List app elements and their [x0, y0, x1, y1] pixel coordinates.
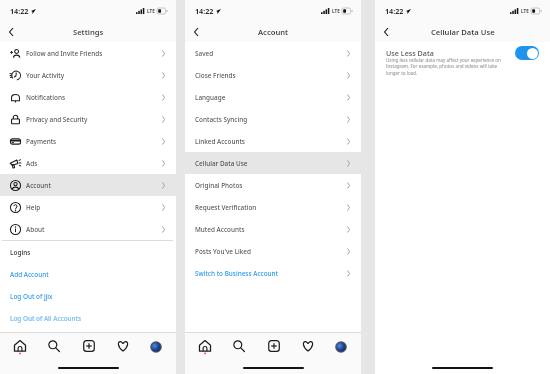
button[interactable]: Search — [45, 337, 63, 355]
button[interactable]: Activity — [114, 337, 132, 355]
button[interactable]: Privacy and Security — [0, 108, 176, 130]
staticText: Using less cellular data may affect your… — [386, 57, 516, 77]
button[interactable]: Follow and Invite Friends — [0, 42, 176, 64]
button[interactable]: Ads — [0, 152, 176, 174]
staticText: Original Photos — [195, 181, 243, 190]
staticText: Cellular Data Use — [195, 159, 248, 168]
button[interactable]: Muted Accounts — [185, 218, 361, 240]
staticText: Add Account — [10, 270, 49, 279]
staticText: Notifications — [26, 93, 66, 102]
button[interactable]: Add Account — [0, 263, 176, 285]
staticText: Account — [26, 181, 51, 190]
staticText: LTE — [147, 8, 155, 14]
button[interactable]: Payments — [0, 130, 176, 152]
button[interactable]: Use Less Data toggle — [515, 46, 539, 60]
staticText: Privacy and Security — [26, 115, 88, 124]
staticText: Logins — [10, 248, 31, 257]
staticText: Your Activity — [26, 71, 65, 80]
staticText: Posts You've Liked — [195, 247, 252, 256]
staticText: Account — [258, 27, 289, 37]
button[interactable]: Switch to Business Account — [185, 262, 361, 284]
staticText: About — [26, 225, 45, 234]
staticText: Muted Accounts — [195, 225, 245, 234]
staticText: Cellular Data Use — [431, 27, 495, 37]
staticText: 14:22 — [385, 6, 404, 16]
staticText: Payments — [26, 137, 57, 146]
staticText: Language — [195, 93, 226, 102]
button[interactable]: Profile — [148, 339, 163, 354]
staticText: Follow and Invite Friends — [26, 49, 103, 58]
button[interactable]: Help — [0, 196, 176, 218]
button[interactable]: Saved — [185, 42, 361, 64]
button[interactable]: Close Friends — [185, 64, 361, 86]
button[interactable]: Search — [230, 337, 248, 355]
staticText: Contacts Syncing — [195, 115, 248, 124]
staticText: Use Less Data — [386, 48, 434, 58]
staticText: Request Verification — [195, 203, 257, 212]
staticText: Linked Accounts — [195, 137, 245, 146]
button[interactable]: Original Photos — [185, 174, 361, 196]
button[interactable]: Log Out of All Accounts — [0, 307, 176, 329]
button[interactable]: Back — [0, 21, 22, 42]
button[interactable]: Activity — [299, 337, 317, 355]
button[interactable]: About — [0, 218, 176, 240]
button[interactable]: Home — [196, 337, 214, 355]
button[interactable]: Notifications — [0, 86, 176, 108]
staticText: Log Out of All Accounts — [10, 314, 82, 323]
button[interactable]: Log Out of jjix — [0, 285, 176, 307]
staticText: Help — [26, 203, 41, 212]
staticText: Switch to Business Account — [195, 269, 279, 278]
button[interactable]: Back — [185, 21, 207, 42]
staticText: 14:22 — [195, 6, 214, 16]
staticText: LTE — [332, 8, 340, 14]
button[interactable]: Account — [0, 174, 176, 196]
staticText: LTE — [521, 8, 529, 14]
button[interactable]: Your Activity — [0, 64, 176, 86]
button[interactable]: Home — [11, 337, 29, 355]
staticText: Log Out of jjix — [10, 292, 53, 301]
button[interactable]: New post — [265, 337, 283, 355]
button[interactable]: Cellular Data Use — [185, 152, 361, 174]
staticText: 14:22 — [10, 6, 29, 16]
button[interactable]: Language — [185, 86, 361, 108]
staticText: Close Friends — [195, 71, 236, 80]
button[interactable]: Posts You've Liked — [185, 240, 361, 262]
button[interactable]: New post — [80, 337, 98, 355]
staticText: Saved — [195, 49, 214, 58]
button[interactable]: Linked Accounts — [185, 130, 361, 152]
button[interactable]: Profile — [333, 339, 348, 354]
button[interactable]: Back — [375, 21, 397, 42]
staticText: Settings — [73, 27, 104, 37]
staticText: Ads — [26, 159, 38, 168]
button[interactable]: Request Verification — [185, 196, 361, 218]
button[interactable]: Contacts Syncing — [185, 108, 361, 130]
